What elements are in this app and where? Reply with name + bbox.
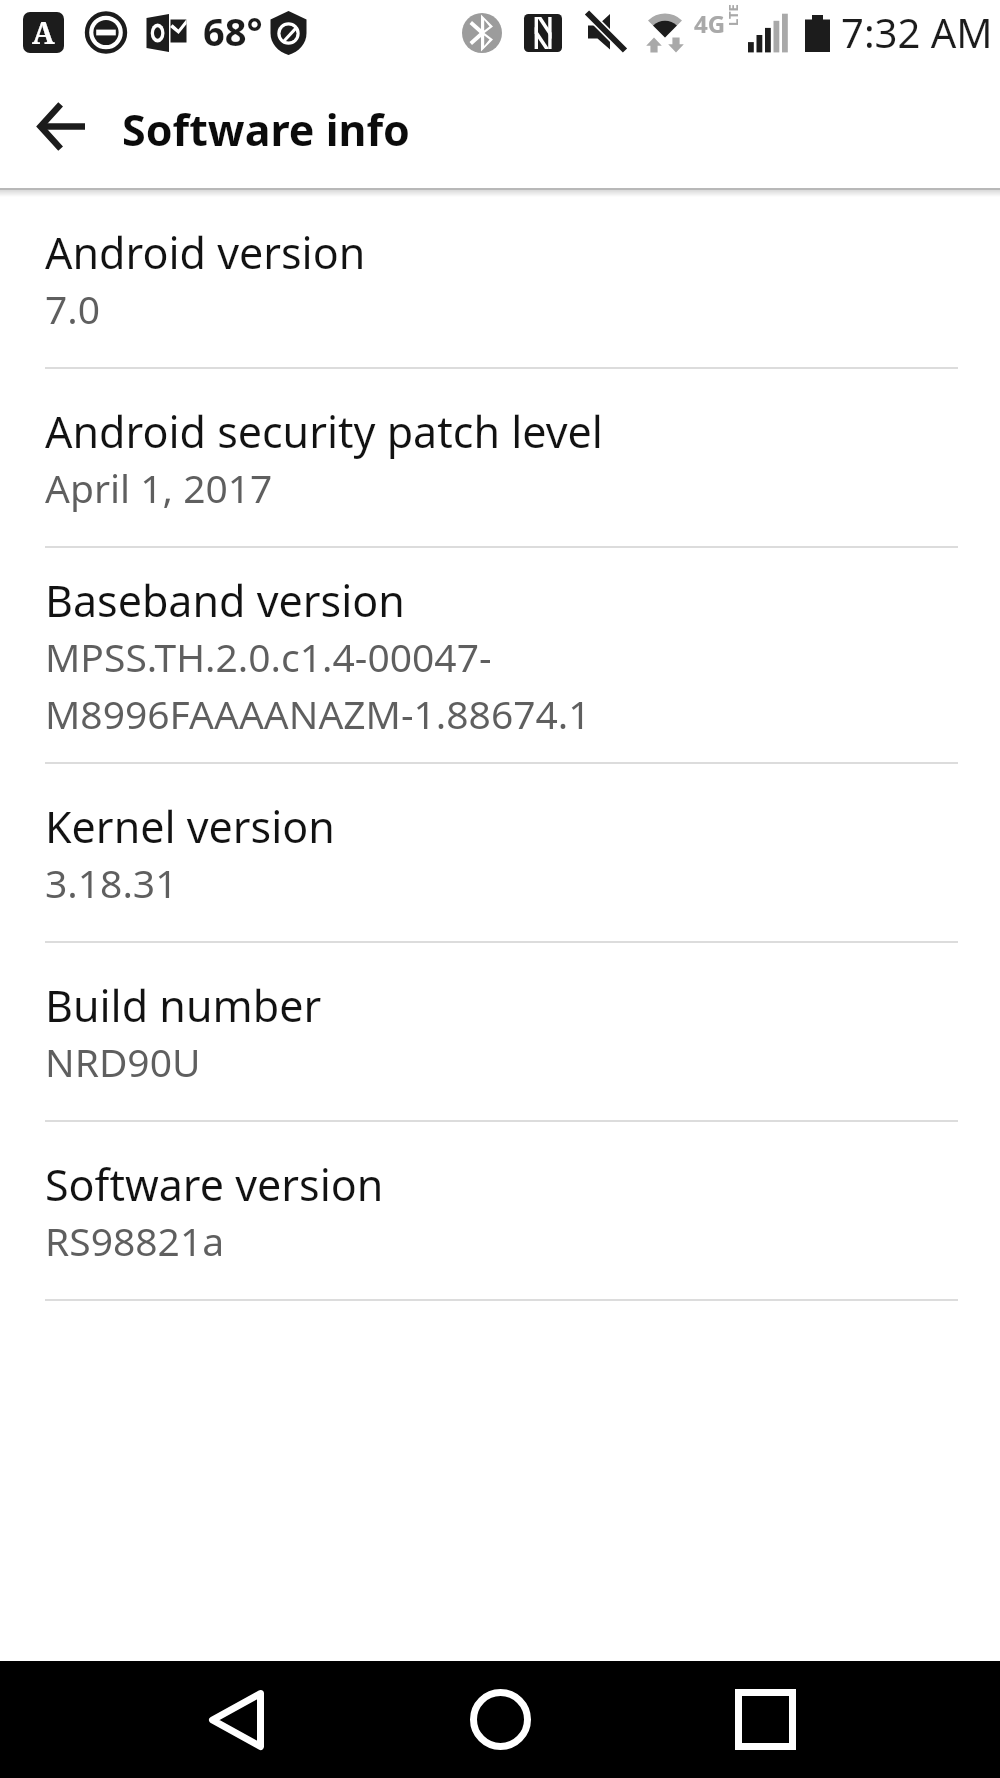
staticText: A [32,12,55,53]
staticText: Baseband version [45,571,405,630]
staticText: 7.0 [45,282,101,335]
staticText: Kernel version [45,797,335,856]
staticText: 4G [694,7,726,40]
staticText: Android version [45,223,366,282]
button[interactable]: Baseband version [0,548,1000,764]
button[interactable]: Build number [0,943,1000,1122]
staticText: 7:32 AM [841,5,993,59]
staticText: Software version [45,1155,384,1214]
staticText: 68° [203,5,263,57]
button[interactable]: Android security patch level [0,369,1000,548]
staticText: 3.18.31 [45,856,178,909]
button[interactable]: Recent apps [705,1661,825,1778]
button[interactable]: Kernel version [0,764,1000,943]
button[interactable]: Home [440,1661,560,1778]
button[interactable]: Android version [0,190,1000,369]
staticText: NRD90U [45,1035,201,1088]
button[interactable]: Software version [0,1122,1000,1301]
staticText: LTE [724,4,742,26]
staticText: RS98821a [45,1214,225,1267]
button[interactable]: Back [176,1661,296,1778]
staticText: Software info [122,100,410,159]
staticText: Build number [45,976,322,1035]
staticText: MPSS.TH.2.0.c1.4-00047- M8996FAAAANAZM-1… [45,630,591,740]
button[interactable]: Navigate up [16,82,108,170]
staticText: April 1, 2017 [45,461,273,514]
staticText: Android security patch level [45,402,603,461]
